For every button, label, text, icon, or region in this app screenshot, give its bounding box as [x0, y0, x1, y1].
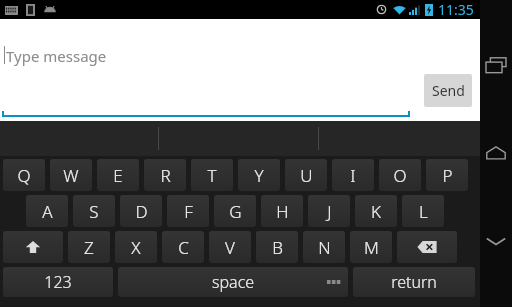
staticText: B [272, 236, 283, 259]
button[interactable]: space [118, 267, 348, 297]
staticText: W [63, 164, 79, 187]
button[interactable]: F [167, 195, 209, 227]
button[interactable]: E [97, 159, 139, 191]
staticText: 11:35 [438, 0, 474, 19]
button[interactable]: O [379, 159, 421, 191]
button[interactable]: M [350, 231, 392, 263]
button[interactable]: A [26, 195, 68, 227]
button[interactable]: J [308, 195, 350, 227]
button[interactable]: Recent apps [480, 52, 512, 78]
button[interactable]: W [50, 159, 92, 191]
button[interactable]: V [209, 231, 251, 263]
staticText: Z [84, 236, 94, 259]
staticText: X [131, 236, 141, 259]
button[interactable]: K [355, 195, 397, 227]
button[interactable]: Q [3, 159, 45, 191]
staticText: T [207, 164, 217, 187]
staticText: K [371, 200, 381, 223]
button[interactable]: X [115, 231, 157, 263]
button[interactable]: H [261, 195, 303, 227]
staticText: H [276, 200, 289, 223]
staticText: L [419, 200, 428, 223]
button[interactable]: N [303, 231, 345, 263]
button[interactable]: T [191, 159, 233, 191]
staticText: P [442, 164, 453, 187]
staticText: N [318, 236, 331, 259]
button[interactable]: 123 [3, 267, 113, 297]
button[interactable]: Back [480, 228, 512, 254]
staticText: G [229, 200, 242, 223]
button[interactable]: D [120, 195, 162, 227]
button[interactable]: I [332, 159, 374, 191]
button[interactable]: Home [480, 140, 512, 166]
staticText: I [350, 164, 356, 187]
button[interactable]: Send [424, 74, 472, 107]
button[interactable]: P [426, 159, 468, 191]
staticText: return [391, 271, 437, 293]
staticText: E [113, 164, 123, 187]
button[interactable]: Backspace [397, 231, 457, 263]
staticText: F [184, 200, 193, 223]
staticText: M [364, 236, 379, 259]
staticText: C [178, 236, 189, 259]
button[interactable]: Shift [3, 231, 63, 263]
button[interactable]: C [162, 231, 204, 263]
staticText: D [135, 200, 148, 223]
staticText: Y [254, 164, 264, 187]
button[interactable]: G [214, 195, 256, 227]
staticText: V [225, 236, 235, 259]
button[interactable]: U [285, 159, 327, 191]
staticText: Q [17, 164, 31, 187]
button[interactable]: B [256, 231, 298, 263]
staticText: 123 [44, 271, 72, 293]
button[interactable]: R [144, 159, 186, 191]
staticText: J [327, 200, 332, 223]
staticText: O [393, 164, 407, 187]
staticText: Type message [6, 46, 107, 66]
staticText: U [300, 164, 313, 187]
button[interactable]: return [353, 267, 475, 297]
staticText: space [212, 271, 255, 293]
button[interactable]: Y [238, 159, 280, 191]
staticText: A [42, 200, 53, 223]
button[interactable]: L [402, 195, 444, 227]
staticText: S [89, 200, 99, 223]
staticText: R [160, 164, 171, 187]
button[interactable]: Z [68, 231, 110, 263]
staticText: Send [432, 81, 465, 100]
button[interactable]: S [73, 195, 115, 227]
